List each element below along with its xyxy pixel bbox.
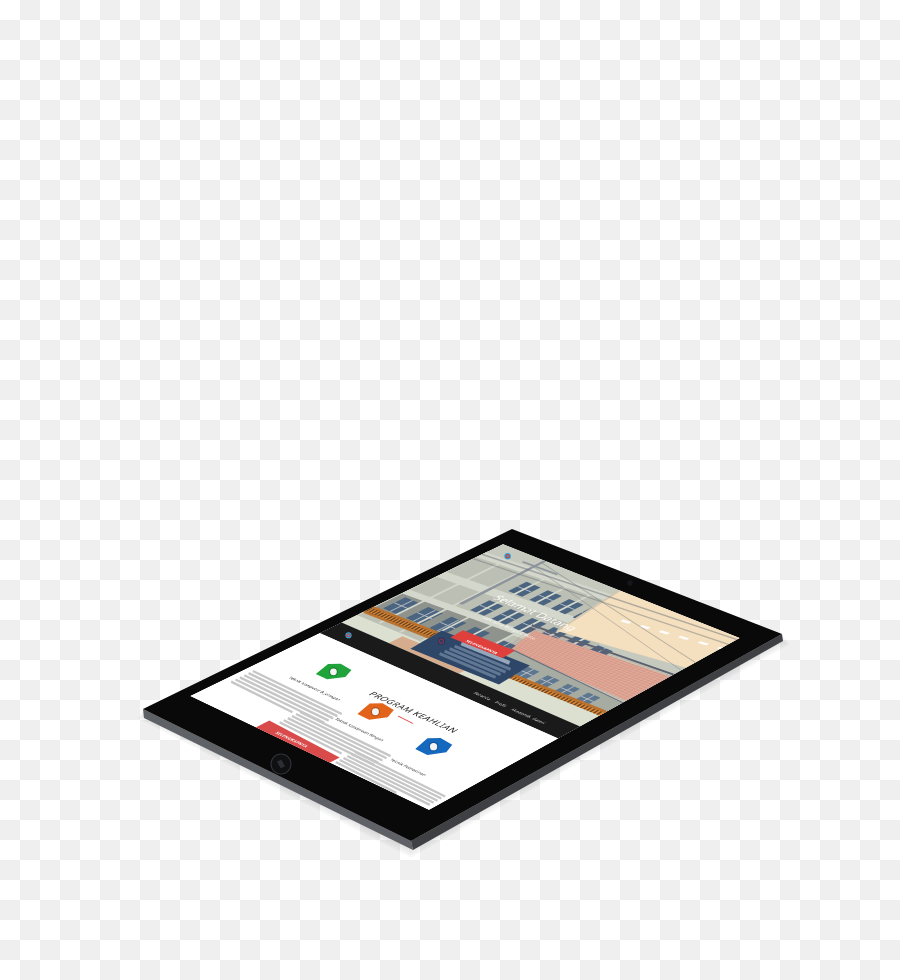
button[interactable]: Tablet device mockup showing a school we… [0,0,900,980]
